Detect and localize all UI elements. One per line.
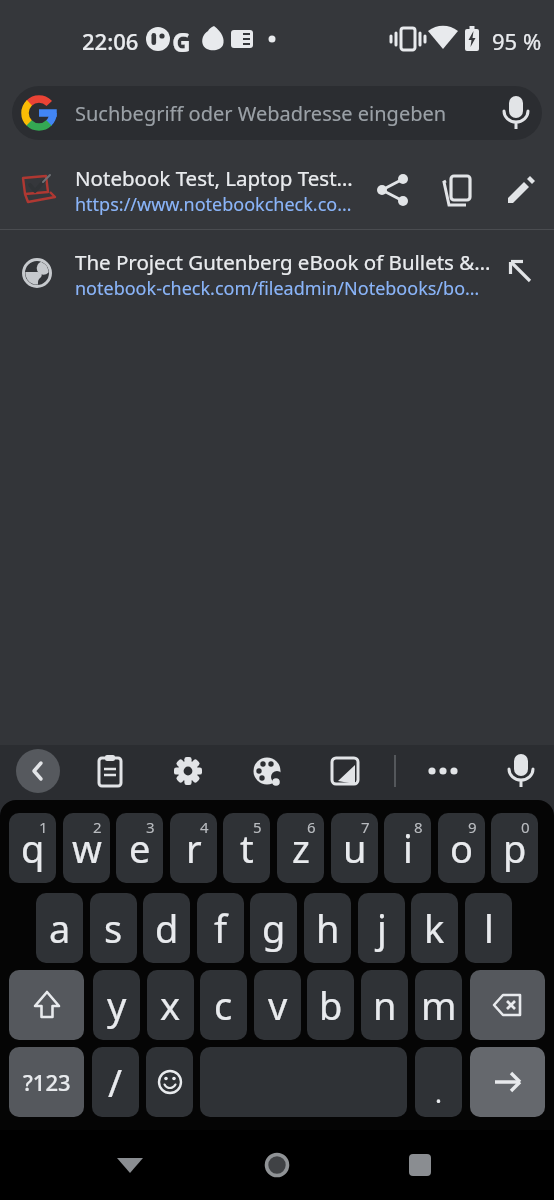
staticText: . [435, 1075, 442, 1110]
button[interactable]: j [358, 893, 405, 963]
staticText: q [21, 822, 45, 874]
staticText: 2 [93, 817, 102, 837]
button[interactable]: Notebook Test, Laptop Test… [0, 150, 554, 229]
button[interactable] [9, 970, 84, 1040]
button[interactable] [16, 749, 60, 793]
staticText: l [484, 902, 494, 954]
button[interactable]: c [200, 970, 247, 1040]
button[interactable]: n [361, 970, 408, 1040]
staticText: The Project Gutenberg eBook of Bullets &… [75, 248, 491, 276]
staticText: 9 [468, 817, 477, 837]
button[interactable]: o [438, 813, 485, 883]
button[interactable]: p [491, 813, 538, 883]
button[interactable] [470, 970, 545, 1040]
button[interactable]: ?123 [9, 1047, 84, 1117]
button[interactable]: f [197, 893, 244, 963]
staticText: x [160, 979, 181, 1031]
staticText: m [421, 979, 457, 1031]
button[interactable] [470, 1047, 545, 1117]
staticText: o [450, 822, 473, 874]
staticText: 22:06 [82, 26, 139, 56]
button[interactable]: k [411, 893, 458, 963]
button[interactable] [200, 1047, 407, 1117]
staticText: / [108, 1056, 123, 1108]
button[interactable]: s [90, 893, 137, 963]
staticText: z [292, 822, 310, 874]
button[interactable] [105, 1140, 155, 1190]
button[interactable]: r [170, 813, 217, 883]
staticText: d [155, 902, 179, 954]
button[interactable]: x [147, 970, 194, 1040]
button[interactable]: d [143, 893, 190, 963]
staticText: 6 [307, 817, 316, 837]
button[interactable]: q [9, 813, 56, 883]
staticText: c [214, 979, 233, 1031]
button[interactable]: t [223, 813, 270, 883]
button[interactable]: h [304, 893, 351, 963]
staticText: r [186, 822, 202, 874]
staticText: j [377, 902, 387, 954]
staticText: y [107, 979, 127, 1031]
button[interactable] [252, 1140, 302, 1190]
staticText: 7 [361, 817, 370, 837]
staticText: n [373, 979, 397, 1031]
staticText: 3 [146, 817, 155, 837]
button[interactable]: Suchbegriff oder Webadresse eingeben [12, 86, 542, 140]
staticText: t [240, 822, 254, 874]
button[interactable]: m [415, 970, 462, 1040]
button[interactable]: The Project Gutenberg eBook of Bullets &… [0, 230, 554, 315]
button[interactable] [146, 1047, 193, 1117]
button[interactable]: a [36, 893, 83, 963]
staticText: 95 % [492, 26, 542, 56]
staticText: h [316, 902, 340, 954]
button[interactable]: y [93, 970, 140, 1040]
button[interactable]: . [415, 1047, 462, 1117]
button[interactable]: w [63, 813, 110, 883]
button[interactable]: v [254, 970, 301, 1040]
staticText: 8 [414, 817, 423, 837]
button[interactable]: g [250, 893, 297, 963]
staticText: https://www.notebookcheck.co… [75, 192, 352, 217]
staticText: a [49, 902, 71, 954]
staticText: 0 [521, 817, 530, 837]
button[interactable]: b [307, 970, 354, 1040]
button[interactable]: z [277, 813, 324, 883]
button[interactable]: e [116, 813, 163, 883]
button[interactable]: i [384, 813, 431, 883]
staticText: p [503, 822, 527, 874]
staticText: v [268, 979, 288, 1031]
staticText: b [319, 979, 343, 1031]
button[interactable] [395, 1140, 445, 1190]
button[interactable]: l [465, 893, 512, 963]
staticText: ?123 [23, 1067, 71, 1097]
staticText: k [424, 902, 445, 954]
staticText: notebook-check.com/fileadmin/Notebooks/b… [75, 276, 480, 301]
staticText: i [403, 822, 413, 874]
staticText: 1 [39, 817, 48, 837]
staticText: Suchbegriff oder Webadresse eingeben [75, 100, 447, 127]
button[interactable]: u [331, 813, 378, 883]
staticText: e [129, 822, 151, 874]
staticText: u [343, 822, 367, 874]
staticText: w [72, 822, 102, 874]
staticText: f [214, 902, 228, 954]
staticText: g [262, 902, 286, 954]
staticText: 5 [253, 817, 262, 837]
staticText: 4 [200, 817, 209, 837]
button[interactable]: / [92, 1047, 139, 1117]
staticText: s [104, 902, 123, 954]
staticText: G [172, 24, 191, 59]
staticText: Notebook Test, Laptop Test… [75, 164, 353, 192]
